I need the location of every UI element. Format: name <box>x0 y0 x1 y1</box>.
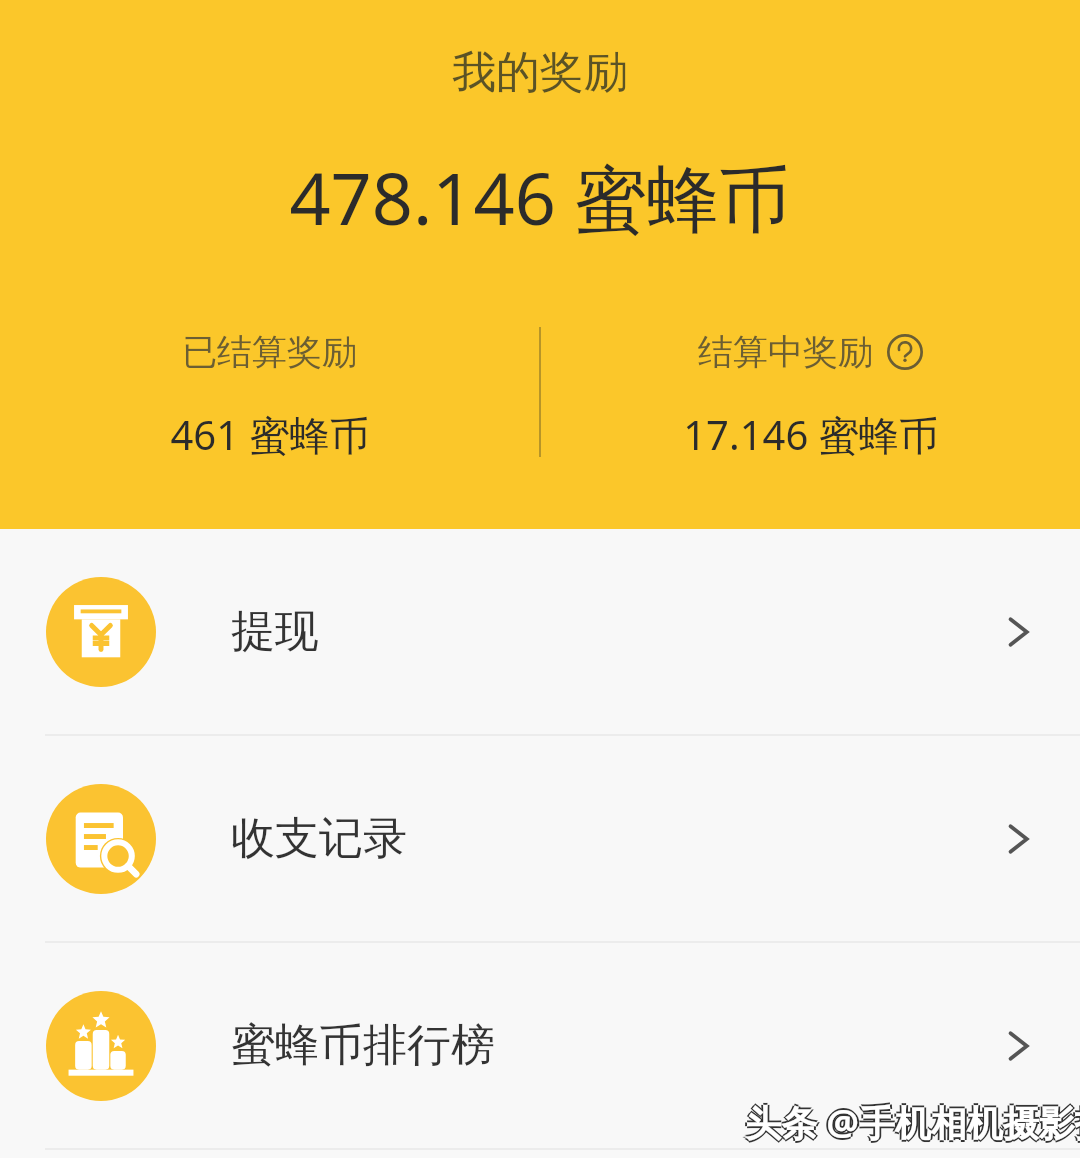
staticText: 提现 <box>231 604 319 659</box>
staticText: 头条 @手机相机摄影技巧 <box>745 1100 1080 1149</box>
staticText: 蜜蜂币排行榜 <box>231 1018 495 1073</box>
staticText: 收支记录 <box>231 811 407 866</box>
staticText: 我的奖励 <box>452 45 628 100</box>
staticText: 17.146 蜜蜂币 <box>683 407 939 462</box>
staticText: 头条 @手机相机摄影技巧 <box>747 1098 1080 1147</box>
staticText: 478.146 蜜蜂币 <box>289 148 791 246</box>
button[interactable]: Help about settling rewards <box>887 334 923 370</box>
staticText: 头条 @手机相机摄影技巧 <box>745 1098 1080 1147</box>
button[interactable]: 收支记录 <box>0 736 1080 941</box>
staticText: 已结算奖励 <box>182 330 357 374</box>
staticText: 头条 @手机相机摄影技巧 <box>745 1096 1080 1145</box>
staticText: 头条 @手机相机摄影技巧 <box>743 1098 1080 1147</box>
button[interactable]: 蜜蜂币排行榜 <box>0 943 1080 1148</box>
staticText: 结算中奖励 <box>698 330 873 374</box>
staticText: 461 蜜蜂币 <box>170 407 370 462</box>
button[interactable]: 提现 <box>0 529 1080 734</box>
